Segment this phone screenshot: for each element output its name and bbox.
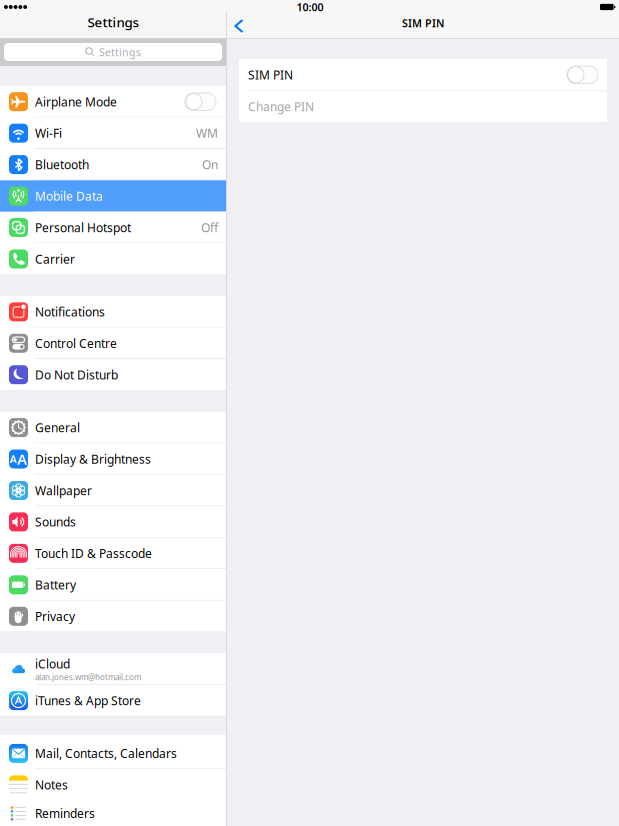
button[interactable]: Carrier [0, 243, 226, 275]
staticText: General [35, 420, 80, 435]
staticText: Bluetooth [35, 157, 89, 173]
button[interactable]: Do Not Disturb [0, 359, 226, 390]
staticText: Notifications [35, 304, 105, 320]
staticText: Do Not Disturb [35, 367, 118, 383]
staticText: Change PIN [248, 98, 314, 114]
button[interactable]: Settings [4, 43, 222, 61]
button[interactable]: Wi-Fi [0, 117, 226, 149]
staticText: 10:00 [296, 0, 323, 14]
staticText: A [10, 452, 17, 466]
button[interactable]: Reminders [0, 798, 226, 826]
button[interactable]: Mail, Contacts, Calendars [0, 738, 226, 769]
staticText: A [17, 449, 27, 469]
staticText: Wallpaper [35, 482, 92, 498]
staticText: Privacy [35, 608, 75, 624]
staticText: Battery [35, 577, 76, 593]
button[interactable]: General [0, 412, 226, 443]
button[interactable]: iCloud [0, 653, 226, 685]
staticText: Display & Brightness [35, 451, 151, 467]
staticText: On [202, 157, 218, 173]
staticText: Airplane Mode [35, 94, 117, 110]
button[interactable]: Touch ID & Passcode [0, 538, 226, 569]
staticText: iTunes & App Store [35, 693, 141, 708]
staticText: Personal Hotspot [35, 220, 131, 235]
button[interactable]: Bluetooth [0, 149, 226, 180]
staticText: SIM PIN [248, 67, 293, 83]
staticText: Carrier [35, 251, 75, 267]
button[interactable]: Sounds [0, 506, 226, 538]
button[interactable]: A [0, 443, 226, 475]
button[interactable]: Change PIN [239, 91, 607, 122]
staticText: WM [196, 125, 218, 141]
staticText: Wi-Fi [35, 125, 62, 141]
staticText: iCloud [35, 656, 70, 672]
staticText: Notes [35, 777, 68, 793]
staticText: Mail, Contacts, Calendars [35, 745, 177, 761]
button[interactable]: SIM PIN [239, 59, 607, 90]
button[interactable]: Battery [0, 569, 226, 600]
button[interactable]: Wallpaper [0, 475, 226, 506]
button[interactable]: iTunes & App Store [0, 685, 226, 716]
staticText: Mobile Data [35, 188, 103, 204]
staticText: SIM PIN [402, 16, 444, 30]
button[interactable]: Notes [0, 769, 226, 801]
staticText: Off [201, 220, 218, 235]
staticText: Settings [99, 45, 141, 59]
button[interactable]: Mobile Data [0, 180, 226, 212]
button[interactable]: Back [230, 16, 250, 36]
staticText: Reminders [35, 805, 95, 821]
button[interactable]: Personal Hotspot [0, 212, 226, 243]
staticText: Sounds [35, 514, 76, 530]
staticText: alan.jones.wm@hotmail.com [35, 672, 141, 682]
button[interactable]: Airplane Mode [0, 86, 226, 117]
staticText: Control Centre [35, 335, 117, 351]
button[interactable]: Notifications [0, 296, 226, 327]
staticText: Settings [87, 13, 138, 31]
button[interactable]: Privacy [0, 600, 226, 632]
staticText: Touch ID & Passcode [35, 545, 152, 561]
button[interactable]: Control Centre [0, 327, 226, 359]
